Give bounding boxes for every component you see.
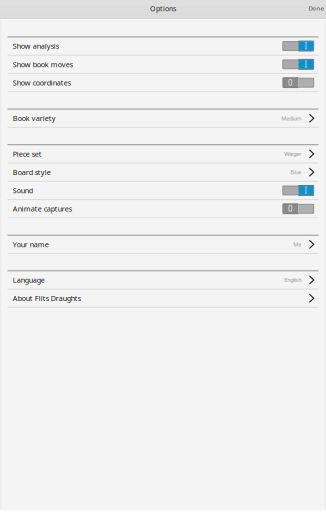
button[interactable]: Animate captures [7,200,318,217]
staticText: Done [308,4,323,12]
staticText: Me [293,240,301,248]
staticText: Medium [281,114,301,122]
button[interactable]: Done [300,0,326,19]
button[interactable]: Sound [7,182,318,199]
staticText: Sound [13,185,33,195]
staticText: About Flits Draughts [13,293,81,303]
staticText: Piece set [13,149,42,159]
staticText: Language [13,275,45,285]
staticText: Your name [13,239,49,249]
staticText: Board style [13,167,51,177]
staticText: Book variety [13,113,56,123]
button[interactable]: Show book moves [7,56,318,73]
staticText: English [284,276,301,284]
button[interactable]: Your name [7,236,318,253]
staticText: I [305,59,308,70]
staticText: Options [150,4,176,13]
button[interactable]: About Flits Draughts [7,290,318,307]
staticText: Wieger [284,150,301,158]
staticText: Show analysis [13,41,59,51]
button[interactable]: Language [7,271,318,289]
staticText: I [305,41,308,51]
staticText: Show book moves [13,59,73,69]
staticText: Blue [290,168,301,176]
staticText: Animate captures [13,204,72,214]
staticText: 0 [288,203,293,214]
button[interactable]: Show coordinates [7,74,318,91]
staticText: Show coordinates [13,78,71,87]
button[interactable]: Piece set [7,145,318,162]
staticText: I [305,185,308,196]
button[interactable]: Show analysis [7,37,318,55]
button[interactable]: Book variety [7,110,318,127]
button[interactable]: Board style [7,163,318,181]
staticText: 0 [288,77,293,88]
